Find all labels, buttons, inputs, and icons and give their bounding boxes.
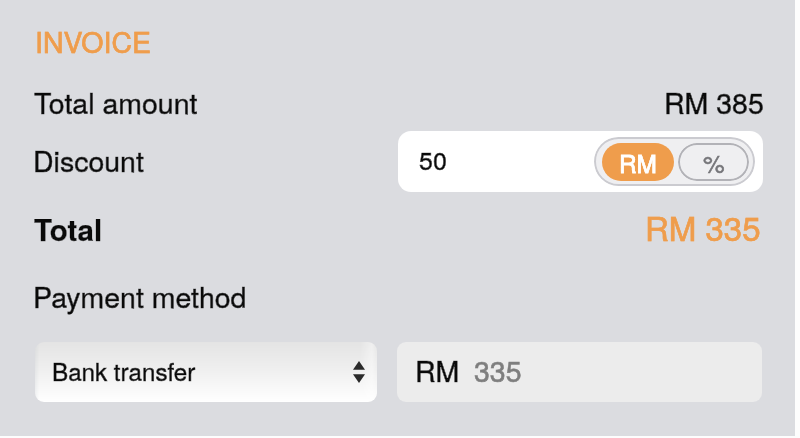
staticText: Bank transfer — [52, 353, 196, 388]
staticText: Bank transfer — [52, 353, 196, 388]
staticText: 50 — [419, 141, 447, 177]
button[interactable]: 50 — [398, 131, 763, 192]
staticText: % — [703, 145, 725, 180]
staticText: RM 385 — [664, 81, 764, 122]
staticText: RM — [415, 349, 460, 390]
staticText: 335 — [474, 349, 522, 390]
staticText: Payment method — [33, 275, 247, 316]
staticText: 335 — [474, 349, 522, 390]
staticText: RM — [619, 145, 657, 180]
button[interactable]: RM — [397, 342, 762, 402]
button[interactable]: Bank transfer — [35, 342, 377, 402]
staticText: % — [703, 145, 725, 180]
staticText: Discount — [33, 139, 144, 180]
other: Open payment method list — [353, 361, 365, 383]
staticText: RM — [619, 145, 657, 180]
staticText: Total amount — [34, 81, 198, 122]
button[interactable]: % — [678, 143, 749, 181]
staticText: Discount — [33, 139, 144, 180]
staticText: Total — [34, 208, 103, 250]
staticText: INVOICE — [35, 20, 152, 61]
staticText: Total amount — [34, 81, 198, 122]
staticText: Total — [34, 208, 103, 250]
staticText: 50 — [419, 141, 447, 177]
staticText: RM 335 — [645, 203, 761, 250]
button[interactable]: RM — [602, 143, 674, 181]
staticText: INVOICE — [35, 20, 152, 61]
staticText: Payment method — [33, 275, 247, 316]
staticText: RM — [415, 349, 460, 390]
staticText: RM 335 — [645, 203, 761, 250]
staticText: RM 385 — [664, 81, 764, 122]
